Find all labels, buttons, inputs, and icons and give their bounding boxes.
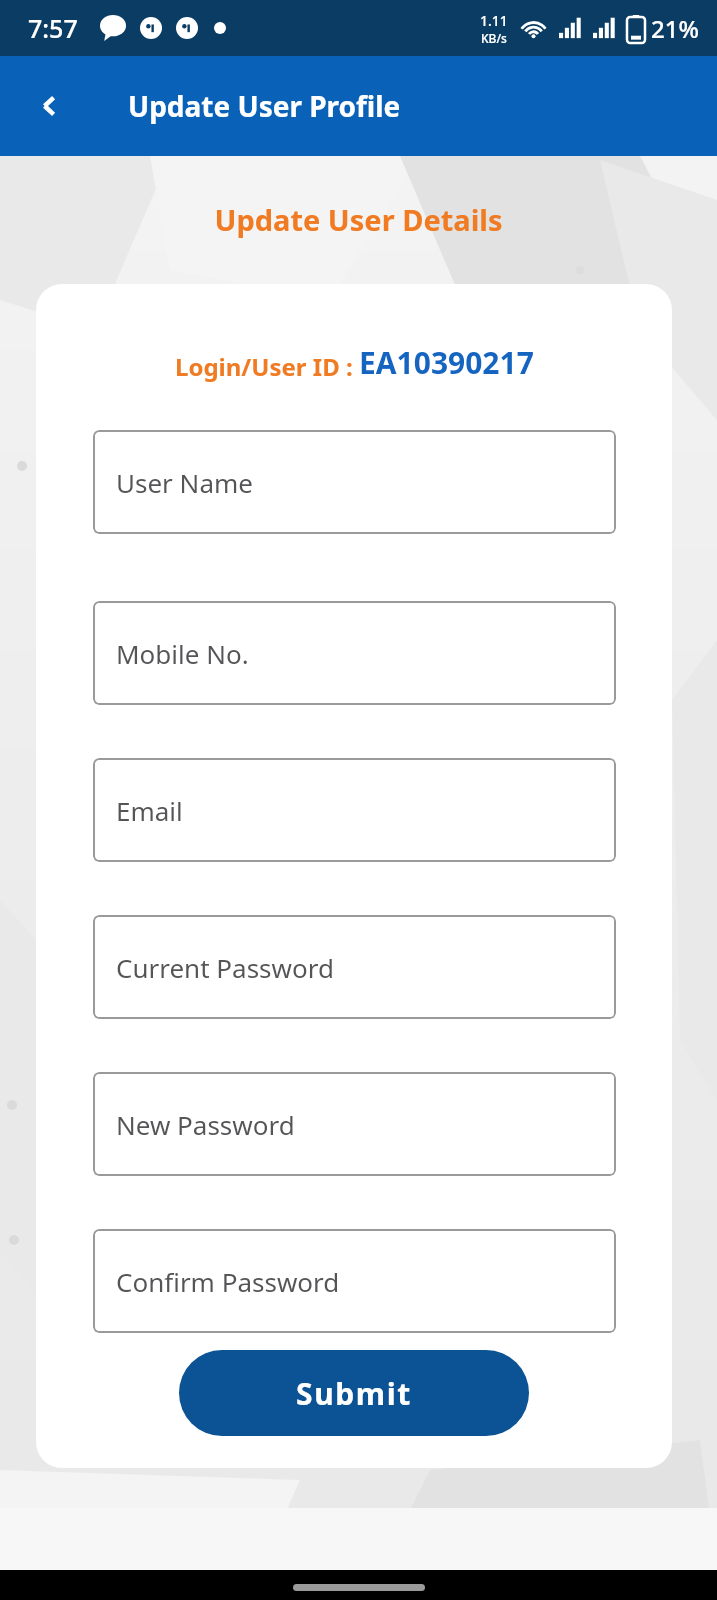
staticText: Submit	[296, 1373, 412, 1414]
staticText: 21%	[651, 12, 699, 45]
staticText: Update User Profile	[128, 87, 401, 125]
staticText: Confirm Password	[116, 1264, 340, 1299]
button[interactable]: Mobile No.	[93, 601, 616, 705]
staticText: EA10390217	[359, 342, 534, 383]
button[interactable]: Email	[93, 758, 616, 862]
button[interactable]: Submit	[179, 1350, 529, 1436]
button[interactable]: Current Password	[93, 915, 616, 1019]
staticText: Update User Details	[214, 200, 503, 239]
staticText: Email	[116, 793, 183, 828]
staticText: New Password	[116, 1107, 295, 1142]
button[interactable]: Confirm Password	[93, 1229, 616, 1333]
button[interactable]: New Password	[93, 1072, 616, 1176]
staticText: 1.11	[480, 11, 508, 30]
staticText: Mobile No.	[116, 636, 249, 671]
staticText: 7:57	[28, 11, 78, 45]
button[interactable]: Back	[20, 76, 80, 136]
staticText: Current Password	[116, 950, 334, 985]
button[interactable]: User Name	[93, 430, 616, 534]
staticText: KB/s	[481, 30, 507, 46]
staticText: Login/User ID :	[175, 350, 359, 383]
staticText: User Name	[116, 465, 253, 500]
